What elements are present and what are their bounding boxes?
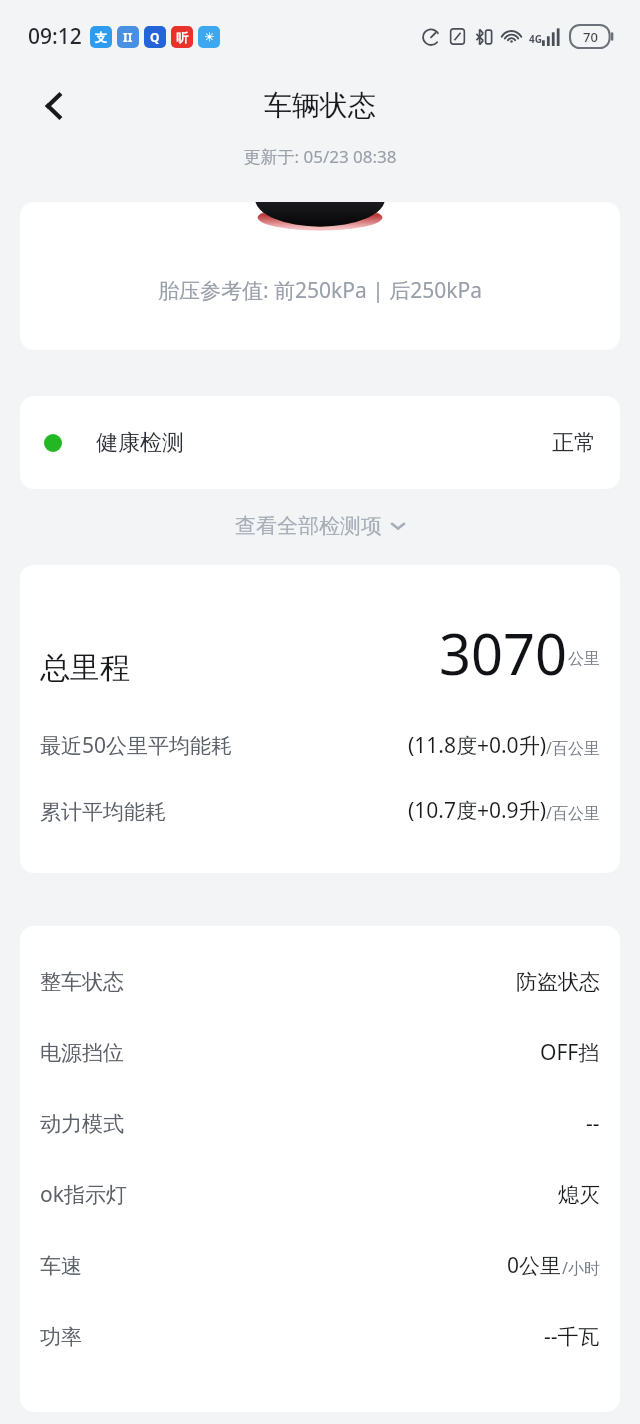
button[interactable]: Back (24, 76, 84, 136)
staticText: 更新于: 05/23 08:38 (243, 145, 397, 168)
staticText: /百公里 (546, 737, 600, 759)
staticText: 熄灭 (558, 1182, 600, 1208)
staticText: 功率 (40, 1324, 82, 1350)
button[interactable]: 整车状态 (20, 946, 620, 1017)
staticText: 健康检测 (96, 429, 184, 457)
staticText: (11.8度+0.0升) (408, 731, 546, 760)
button[interactable]: 功率 (20, 1301, 620, 1372)
staticText: ok指示灯 (40, 1180, 127, 1209)
staticText: II (123, 29, 133, 45)
staticText: 查看全部检测项 (235, 513, 382, 539)
staticText: 动力模式 (40, 1111, 124, 1137)
button[interactable]: 动力模式 (20, 1088, 620, 1159)
staticText: 最近50公里平均能耗 (40, 731, 233, 760)
staticText: 0公里 (507, 1251, 562, 1280)
staticText: 09:12 (28, 22, 82, 51)
button[interactable]: 电源挡位 (20, 1017, 620, 1088)
staticText: 防盗状态 (516, 969, 600, 995)
staticText: 累计平均能耗 (40, 799, 166, 825)
staticText: 总里程 (40, 649, 130, 687)
staticText: 听 (176, 30, 188, 45)
button[interactable]: 总里程 (20, 565, 620, 873)
staticText: 公里 (568, 649, 600, 669)
staticText: 70 (583, 28, 598, 46)
staticText: -- (586, 1109, 600, 1138)
button[interactable]: 查看全部检测项 (225, 507, 416, 545)
staticText: Q (150, 29, 160, 45)
staticText: 电源挡位 (40, 1040, 124, 1066)
staticText: 3070 (439, 615, 568, 691)
button[interactable]: 胎压参考值: 前250kPa | 后250kPa (20, 202, 620, 350)
staticText: 正常 (552, 429, 596, 457)
staticText: 支 (95, 30, 107, 45)
button[interactable]: 健康检测 (20, 396, 620, 489)
staticText: 车辆状态 (264, 88, 376, 123)
staticText: /百公里 (546, 802, 600, 824)
staticText: 整车状态 (40, 969, 124, 995)
staticText: --千瓦 (544, 1322, 600, 1351)
staticText: (10.7度+0.9升) (408, 796, 546, 825)
staticText: 4G (529, 32, 542, 46)
button[interactable]: 车速 (20, 1230, 620, 1301)
staticText: 车速 (40, 1253, 82, 1279)
button[interactable]: ok指示灯 (20, 1159, 620, 1230)
staticText: ☀ (204, 30, 215, 44)
staticText: OFF挡 (540, 1038, 600, 1067)
staticText: /小时 (562, 1257, 600, 1279)
staticText: 胎压参考值: 前250kPa | 后250kPa (158, 276, 483, 305)
